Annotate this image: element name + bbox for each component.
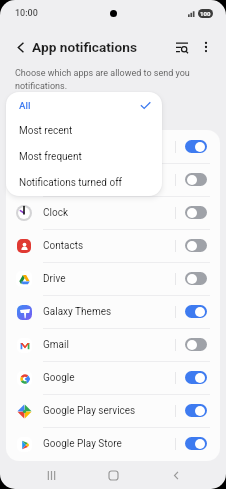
button[interactable]: Off	[185, 206, 207, 219]
staticText: Google	[43, 372, 75, 384]
button[interactable]: Galaxy Themes	[6, 295, 220, 328]
button[interactable]: Google	[6, 361, 220, 394]
staticText: Most recent	[19, 125, 73, 137]
staticText: Clock	[43, 207, 68, 219]
staticText: Google Play services	[43, 405, 136, 417]
button[interactable]: Notifications turned off	[6, 170, 162, 196]
staticText: Notifications turned off	[19, 177, 123, 189]
button[interactable]: Back	[164, 463, 188, 487]
staticText: All	[19, 100, 31, 111]
button[interactable]: Off	[185, 239, 207, 252]
staticText: Galaxy Themes	[43, 306, 112, 318]
button[interactable]: More options	[196, 37, 216, 57]
staticText: App notifications	[32, 39, 137, 55]
staticText: Calendar	[43, 141, 83, 153]
button[interactable]: Home	[101, 463, 125, 487]
button[interactable]: Clock	[6, 196, 220, 229]
button[interactable]: Search	[171, 36, 193, 58]
button[interactable]: Contacts	[6, 229, 220, 262]
staticText: Gmail	[43, 339, 69, 351]
button[interactable]: Most recent	[6, 118, 162, 144]
button[interactable]: Off	[185, 272, 207, 285]
button[interactable]: Back	[10, 37, 30, 57]
button[interactable]: On	[185, 371, 207, 384]
button[interactable]: Google Play Store	[6, 427, 220, 460]
staticText: Contacts	[43, 240, 84, 252]
button[interactable]: Calendar	[6, 130, 220, 163]
button[interactable]: Camera	[6, 163, 220, 196]
button[interactable]: Google Play services	[6, 394, 220, 427]
button[interactable]: On	[185, 404, 207, 417]
staticText: 100	[200, 10, 211, 17]
staticText: Drive	[43, 273, 66, 285]
button[interactable]: On	[185, 437, 207, 450]
button[interactable]: Drive	[6, 262, 220, 295]
button[interactable]: All	[6, 92, 162, 118]
button[interactable]: Most frequent	[6, 144, 162, 170]
button[interactable]: Recents	[39, 463, 63, 487]
button[interactable]: Off	[185, 173, 207, 186]
button[interactable]: On	[185, 305, 207, 318]
button[interactable]: Off	[185, 338, 207, 351]
button[interactable]: Gmail	[6, 328, 220, 361]
staticText: Google Play Store	[43, 438, 122, 450]
staticText: Camera	[43, 174, 78, 186]
staticText: Most frequent	[19, 151, 82, 163]
staticText: Choose which apps are allowed to send yo…	[15, 68, 201, 91]
staticText: 10:00	[15, 8, 38, 19]
button[interactable]: On	[185, 140, 207, 153]
